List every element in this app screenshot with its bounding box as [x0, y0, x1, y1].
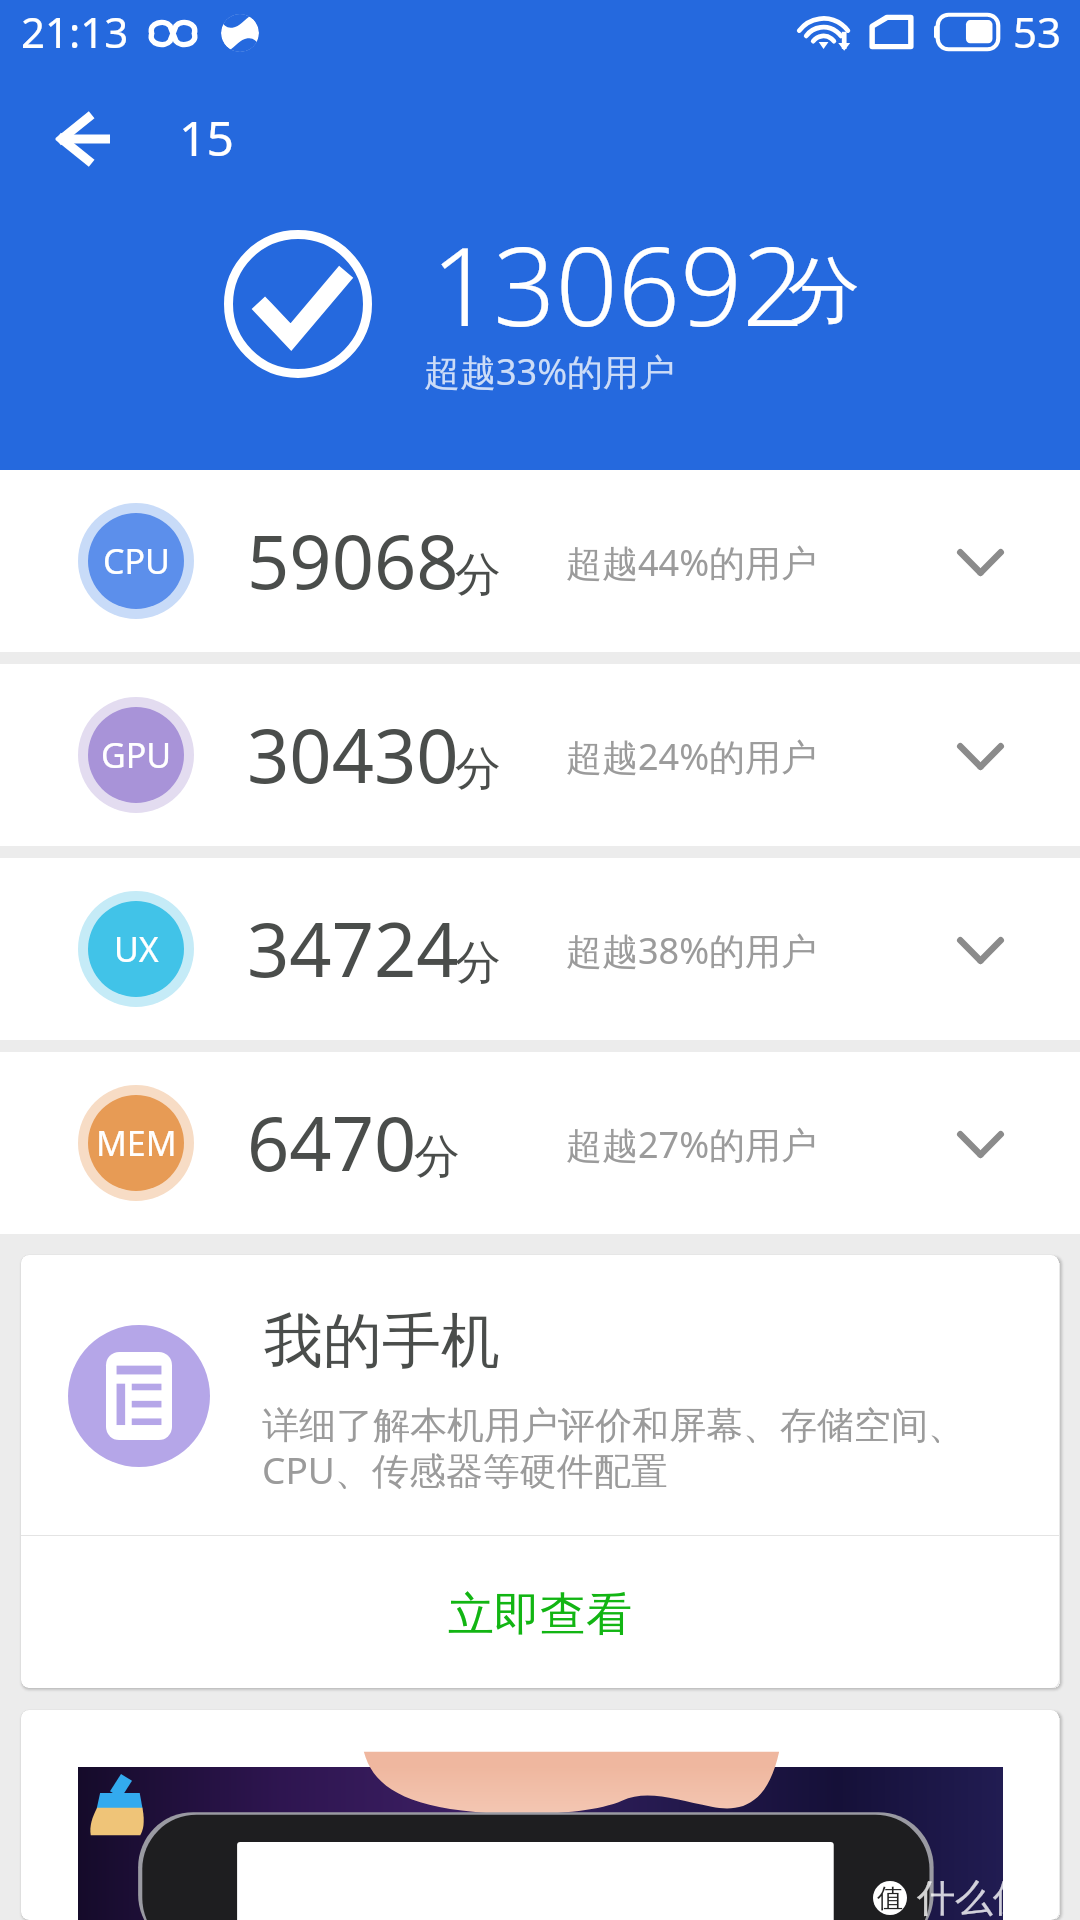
staticText: 超越44%的用户 [566, 538, 818, 587]
staticText: 超越24%的用户 [566, 732, 818, 781]
staticText: 53 [1013, 3, 1062, 60]
staticText: 分 [414, 1128, 460, 1186]
button[interactable]: MEM [0, 1052, 1080, 1234]
staticText: 分 [455, 546, 501, 604]
staticText: 我的手机 [264, 1304, 500, 1378]
staticText: 30430 [247, 704, 459, 805]
other: Expand [957, 743, 1004, 770]
button[interactable]: CPU [0, 470, 1080, 652]
staticText: 分 [455, 934, 501, 992]
other: Expand [957, 1131, 1004, 1158]
staticText: CPU [103, 538, 170, 584]
other: Expand [957, 549, 1004, 576]
other: Expand [957, 937, 1004, 964]
button[interactable]: 立即查看 [21, 1536, 1059, 1688]
staticText: 什么值得买 [917, 1874, 1059, 1920]
staticText: 6470 [247, 1092, 417, 1193]
staticText: 超越33%的用户 [424, 347, 676, 396]
button[interactable]: Back [32, 87, 136, 191]
staticText: 超越38%的用户 [566, 926, 818, 975]
staticText: 34724 [247, 898, 459, 999]
button[interactable]: UX [0, 858, 1080, 1040]
staticText: GPU [101, 732, 172, 778]
staticText: 分 [788, 246, 860, 337]
staticText: 立即查看 [448, 1586, 632, 1644]
button[interactable]: 我的手机 [21, 1255, 1059, 1535]
staticText: 130692 [431, 209, 805, 357]
staticText: 21:13 [21, 3, 129, 60]
staticText: 超越27%的用户 [566, 1120, 818, 1169]
staticText: MEM [96, 1120, 177, 1166]
staticText: 15 [179, 105, 234, 170]
staticText: 值 [877, 1882, 903, 1915]
staticText: 59068 [247, 510, 459, 611]
button[interactable]: GPU [0, 664, 1080, 846]
staticText: 分 [455, 740, 501, 798]
staticText: UX [114, 926, 159, 972]
button[interactable]: 值 [21, 1710, 1059, 1920]
staticText: 详细了解本机用户评价和屏幕、存储空间、 CPU、传感器等硬件配置 [262, 1402, 965, 1495]
